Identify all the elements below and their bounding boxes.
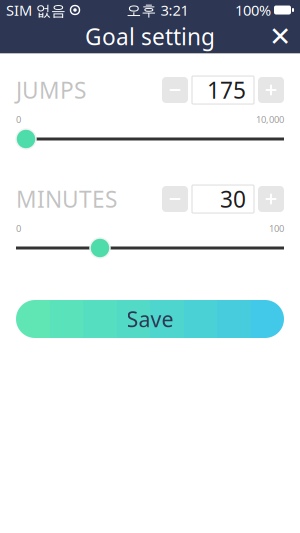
staticText: 0 xyxy=(16,222,21,235)
staticText: MINUTES xyxy=(16,184,117,214)
staticText: 175 xyxy=(207,75,246,105)
button[interactable]: Save xyxy=(16,300,284,338)
staticText: 100% xyxy=(235,0,271,20)
button[interactable]: Increase xyxy=(258,77,284,103)
staticText: 오후 3:21 xyxy=(126,0,188,20)
staticText: 10,000 xyxy=(256,113,284,126)
staticText: JUMPS xyxy=(16,75,86,105)
staticText: SIM 없음 xyxy=(6,0,66,20)
staticText: 30 xyxy=(220,184,246,214)
button[interactable]: Close xyxy=(260,20,300,53)
staticText: 100 xyxy=(269,222,284,235)
staticText: Save xyxy=(126,305,173,333)
staticText: 0 xyxy=(16,113,21,126)
button[interactable]: Decrease xyxy=(162,186,188,212)
button[interactable]: Increase xyxy=(258,186,284,212)
staticText: Goal setting xyxy=(85,21,215,51)
staticText: ✕ xyxy=(269,21,291,52)
button[interactable]: Decrease xyxy=(162,77,188,103)
